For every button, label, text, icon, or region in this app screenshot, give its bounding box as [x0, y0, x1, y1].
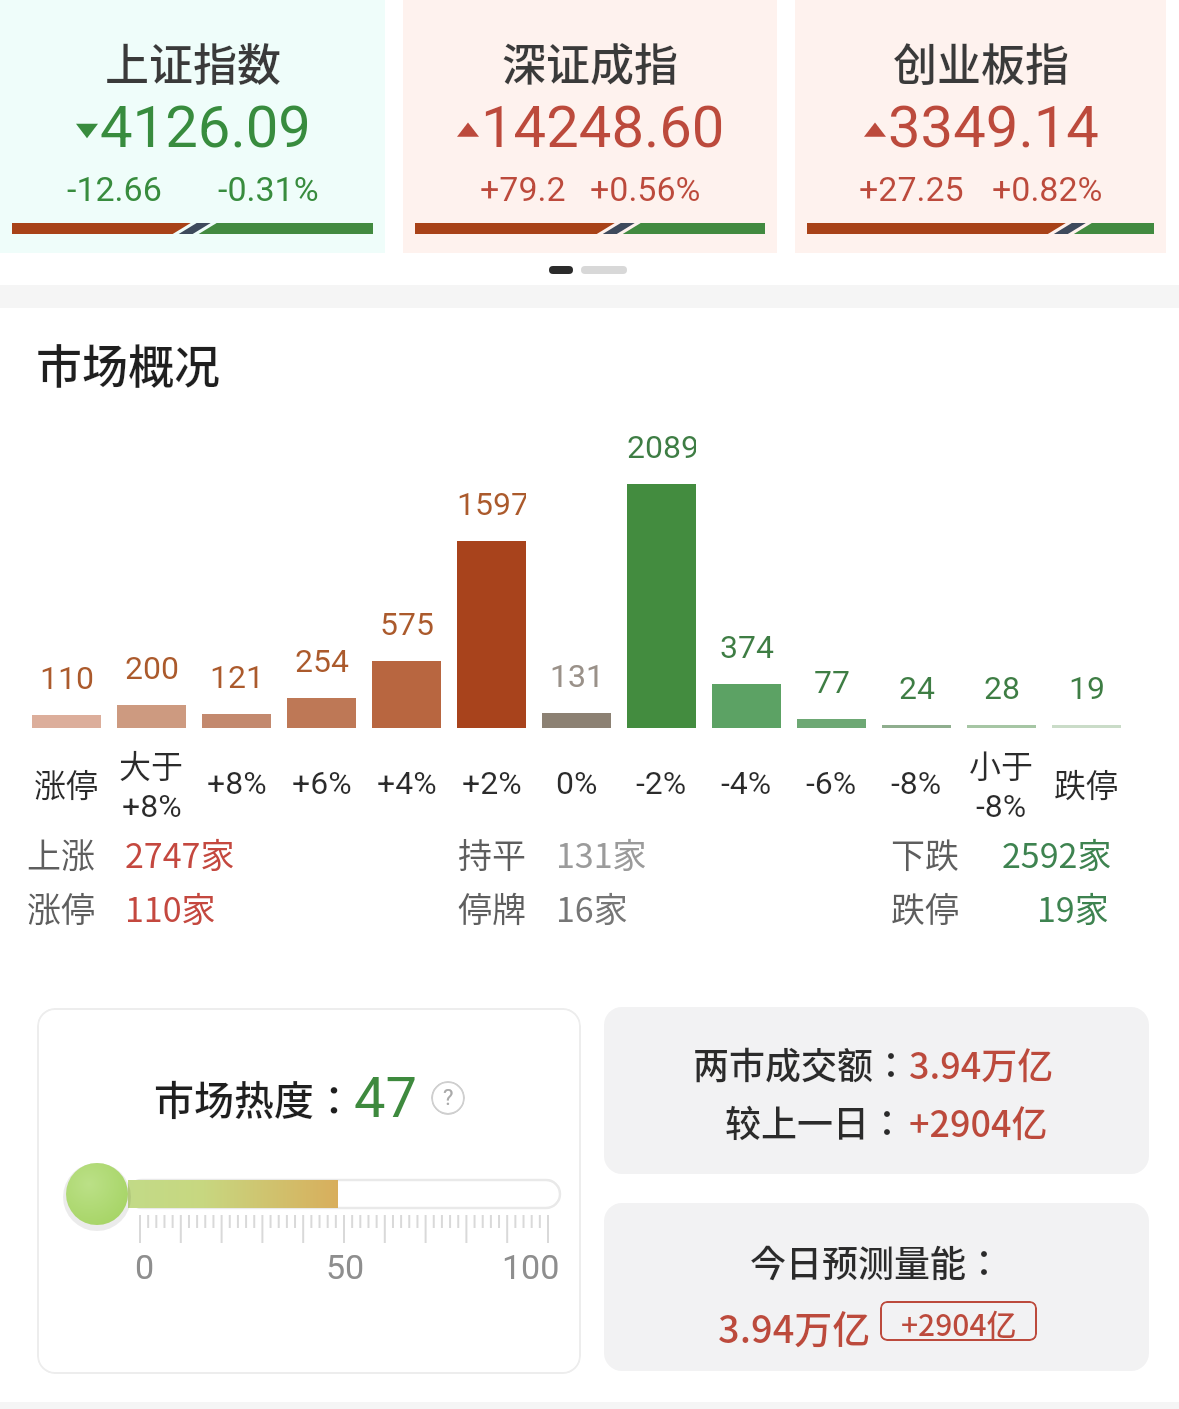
staticText: 大于	[119, 741, 184, 787]
staticText: 200	[125, 649, 179, 687]
staticText: 100	[502, 1247, 560, 1287]
staticText: 停牌	[458, 883, 526, 932]
button[interactable]: 持平	[458, 829, 526, 878]
staticText: 持平	[458, 829, 526, 878]
staticText: +8%	[207, 764, 267, 802]
staticText: 创业板指	[893, 30, 1069, 94]
staticText: 0%	[556, 764, 598, 802]
staticText: 131家	[556, 829, 647, 878]
staticText: -6%	[806, 764, 857, 802]
staticText: 2089	[627, 428, 696, 466]
staticText: 374	[720, 628, 774, 666]
staticText: 4126.09	[100, 93, 311, 161]
staticText: 28	[984, 669, 1020, 707]
staticText: -8%	[891, 764, 942, 802]
button[interactable]: 创业板指	[795, 0, 1166, 253]
staticText: 2747家	[125, 829, 235, 878]
staticText: 小于	[969, 741, 1034, 787]
staticText: +79.2	[480, 169, 566, 209]
staticText: +2904亿	[909, 1095, 1048, 1147]
staticText: 较上一日：	[725, 1095, 906, 1147]
staticText: +6%	[292, 764, 352, 802]
button[interactable]: 深证成指	[403, 0, 777, 253]
staticText: -12.66	[67, 169, 162, 209]
button[interactable]: 下跌	[891, 829, 959, 878]
staticText: +2%	[462, 764, 522, 802]
button[interactable]: Help	[431, 1081, 465, 1115]
staticText: 131	[550, 657, 604, 695]
staticText: 上涨	[27, 829, 95, 878]
staticText: 涨停	[27, 883, 95, 932]
staticText: 575	[380, 605, 434, 643]
button[interactable]: 上涨	[27, 829, 95, 878]
staticText: 121	[210, 658, 264, 696]
staticText: 深证成指	[502, 30, 678, 94]
staticText: +2904亿	[901, 1301, 1017, 1341]
staticText: 市场概况	[36, 330, 220, 397]
staticText: 1597	[457, 485, 526, 523]
button[interactable]: 上证指数	[0, 0, 385, 253]
button[interactable]: 市场热度：	[37, 1008, 581, 1374]
staticText: 市场热度：	[154, 1069, 354, 1127]
staticText: +0.56%	[590, 169, 701, 209]
button[interactable]: 两市成交额：	[604, 1007, 1149, 1174]
staticText: 跌停	[1054, 760, 1119, 806]
staticText: 47	[354, 1065, 417, 1131]
staticText: -0.31%	[218, 169, 319, 209]
staticText: 上证指数	[105, 30, 281, 94]
staticText: ?	[443, 1085, 454, 1111]
staticText: -8%	[976, 787, 1027, 825]
button[interactable]: 涨停	[27, 883, 95, 932]
staticText: +0.82%	[992, 169, 1103, 209]
button[interactable]: 停牌	[458, 883, 526, 932]
staticText: 110	[40, 659, 94, 697]
staticText: 今日预测量能：	[750, 1235, 1003, 1287]
staticText: 3.94万亿	[909, 1037, 1054, 1089]
staticText: -4%	[721, 764, 772, 802]
staticText: 19	[1069, 669, 1105, 707]
staticText: 3349.14	[888, 93, 1099, 161]
staticText: +27.25	[859, 169, 964, 209]
staticText: 19家	[1037, 883, 1109, 932]
staticText: 3.94万亿	[718, 1299, 871, 1354]
staticText: 14248.60	[481, 93, 725, 161]
staticText: 77	[814, 663, 850, 701]
button[interactable]: 跌停	[891, 883, 959, 932]
staticText: 16家	[556, 883, 628, 932]
button[interactable]: 今日预测量能：	[604, 1203, 1149, 1371]
staticText: 50	[326, 1247, 365, 1287]
staticText: 两市成交额：	[693, 1037, 910, 1089]
staticText: 涨停	[34, 760, 99, 806]
staticText: -2%	[636, 764, 687, 802]
staticText: 2592家	[1002, 829, 1112, 878]
staticText: 24	[899, 669, 935, 707]
staticText: +8%	[122, 787, 182, 825]
staticText: 110家	[125, 883, 216, 932]
staticText: +4%	[377, 764, 437, 802]
staticText: 跌停	[891, 883, 959, 932]
staticText: 254	[295, 642, 349, 680]
staticText: 0	[135, 1247, 155, 1287]
staticText: 下跌	[891, 829, 959, 878]
